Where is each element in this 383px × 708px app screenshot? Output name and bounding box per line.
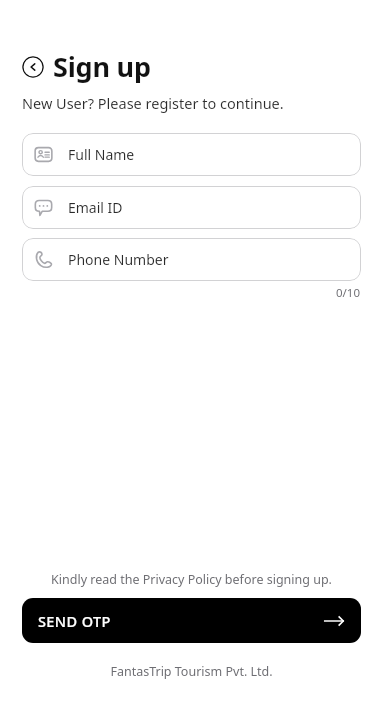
- button[interactable]: Email ID: [22, 186, 361, 229]
- staticText: Phone Number: [68, 250, 169, 269]
- staticText: 0/10: [336, 285, 361, 301]
- staticText: New User? Please register to continue.: [22, 93, 284, 113]
- staticText: FantasTrip Tourism Pvt. Ltd.: [0, 663, 383, 680]
- staticText: Full Name: [68, 145, 135, 164]
- staticText: Kindly read the Privacy Policy before si…: [0, 571, 383, 588]
- staticText: Email ID: [68, 198, 123, 217]
- staticText: Sign up: [53, 48, 151, 85]
- button[interactable]: Full Name: [22, 133, 361, 176]
- staticText: SEND OTP: [38, 611, 111, 631]
- button[interactable]: SEND OTP: [22, 598, 361, 643]
- button[interactable]: Phone Number: [22, 238, 361, 281]
- button[interactable]: Back: [22, 56, 44, 78]
